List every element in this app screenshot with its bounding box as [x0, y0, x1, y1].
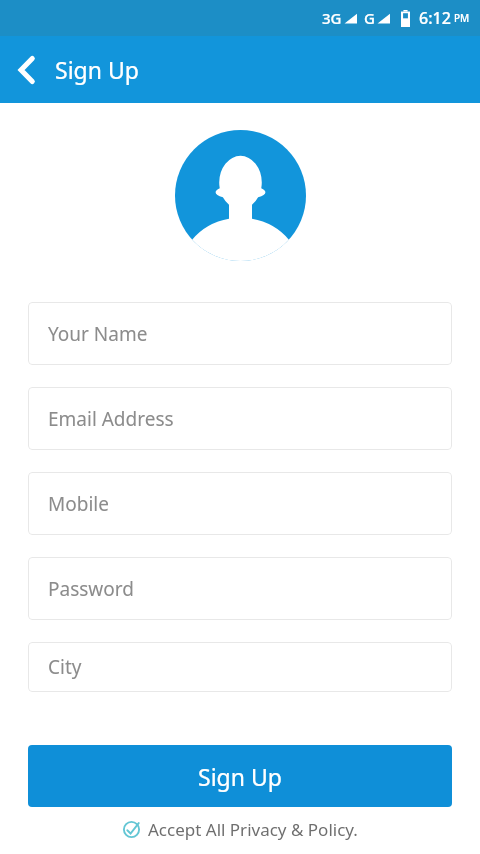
button[interactable]: Your Name	[28, 302, 452, 365]
button[interactable]: Email Address	[28, 387, 452, 450]
staticText: PM	[454, 11, 470, 25]
staticText: Mobile	[48, 491, 109, 517]
staticText: Email Address	[48, 406, 174, 432]
button[interactable]: Back	[4, 48, 48, 92]
staticText: Password	[48, 576, 134, 602]
staticText: Sign Up	[55, 54, 139, 85]
button[interactable]: City	[28, 642, 452, 692]
staticText: City	[48, 654, 82, 680]
staticText: 6:12	[419, 7, 451, 29]
staticText: 3G	[322, 8, 342, 28]
staticText: Accept All Privacy & Policy.	[148, 818, 358, 841]
staticText: G	[364, 8, 375, 28]
button[interactable]: Accept All Privacy & Policy.	[0, 818, 480, 841]
staticText: Sign Up	[198, 761, 282, 792]
button[interactable]: Mobile	[28, 472, 452, 535]
button[interactable]: Sign Up	[28, 745, 452, 807]
button[interactable]: Password	[28, 557, 452, 620]
staticText: Your Name	[48, 321, 148, 347]
